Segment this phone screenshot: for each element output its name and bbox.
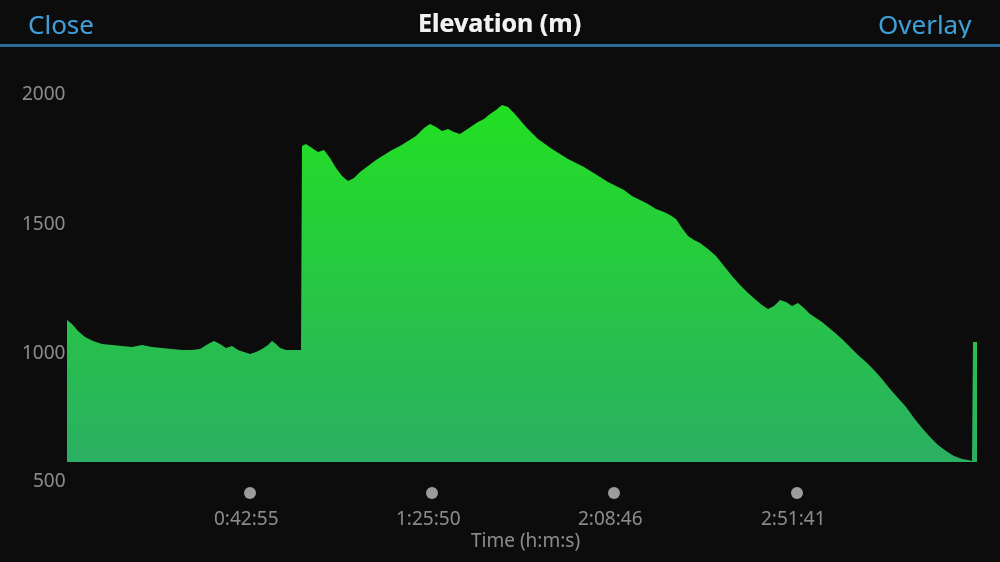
staticText: Time (h:m:s)	[471, 527, 581, 553]
staticText: 2:08:46	[578, 505, 643, 531]
button[interactable]: Close	[18, 0, 104, 44]
staticText: 2000	[22, 80, 66, 106]
staticText: 0:42:55	[214, 505, 279, 531]
staticText: 500	[33, 467, 66, 493]
staticText: 1:25:50	[396, 505, 461, 531]
staticText: Close	[28, 6, 94, 38]
staticText: 1000	[22, 339, 66, 365]
staticText: 2:51:41	[761, 505, 826, 531]
staticText: 1500	[22, 210, 66, 236]
staticText: Elevation (m)	[418, 5, 582, 39]
button[interactable]: Overlay	[868, 0, 982, 44]
staticText: Overlay	[878, 6, 972, 38]
